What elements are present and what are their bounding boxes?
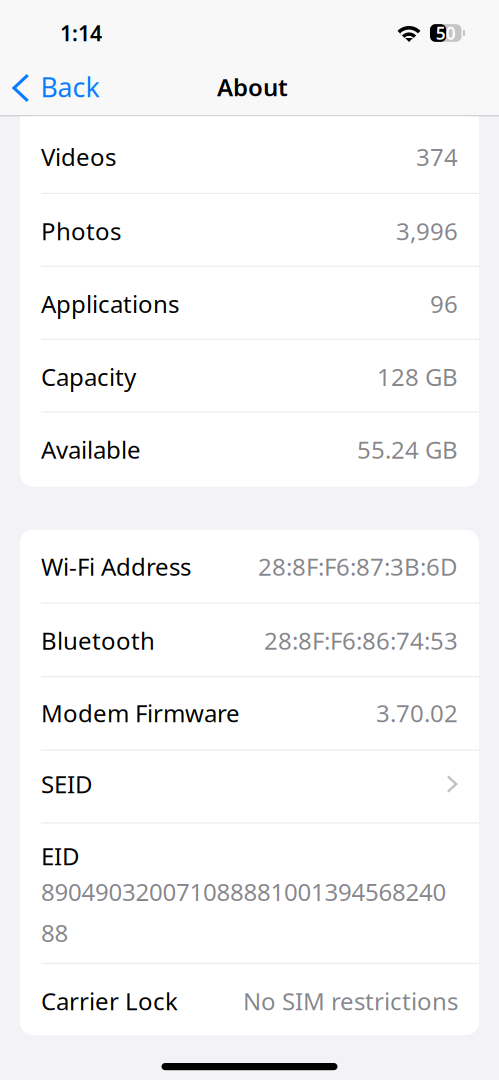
button[interactable]: Modem Firmware xyxy=(20,677,479,749)
staticText: 50 xyxy=(436,21,456,44)
staticText: 89049032007108888100139456824088 xyxy=(41,876,446,948)
staticText: About xyxy=(217,71,288,103)
button[interactable]: EID xyxy=(20,823,479,963)
staticText: Capacity xyxy=(41,361,136,393)
button[interactable]: Back xyxy=(0,61,109,113)
staticText: No SIM restrictions xyxy=(243,985,458,1017)
button[interactable]: Available xyxy=(20,413,479,487)
staticText: Applications xyxy=(41,288,179,320)
staticText: Wi-Fi Address xyxy=(41,551,191,582)
button[interactable]: Videos xyxy=(20,116,479,193)
button[interactable]: Carrier Lock xyxy=(20,964,479,1035)
staticText: Photos xyxy=(41,215,121,247)
staticText: 1:14 xyxy=(60,19,102,47)
staticText: 374 xyxy=(416,141,458,173)
staticText: 55.24 GB xyxy=(357,434,458,465)
button[interactable]: Capacity xyxy=(20,340,479,411)
staticText: 28:8F:F6:87:3B:6D xyxy=(258,551,458,582)
button[interactable]: Photos xyxy=(20,194,479,266)
button[interactable]: SEID xyxy=(20,751,479,822)
staticText: SEID xyxy=(41,768,93,800)
button[interactable]: Bluetooth xyxy=(20,604,479,676)
staticText: Carrier Lock xyxy=(41,985,178,1017)
staticText: 128 GB xyxy=(377,361,458,393)
staticText: 96 xyxy=(430,288,458,320)
staticText: Bluetooth xyxy=(41,625,155,656)
staticText: 3,996 xyxy=(396,215,458,247)
staticText: Modem Firmware xyxy=(41,697,240,729)
staticText: EID xyxy=(41,840,80,872)
staticText: Available xyxy=(41,434,141,465)
staticText: 3.70.02 xyxy=(376,697,458,729)
staticText: Videos xyxy=(41,141,116,173)
staticText: Back xyxy=(40,69,99,105)
staticText: 28:8F:F6:86:74:53 xyxy=(264,625,458,656)
button[interactable]: Applications xyxy=(20,267,479,339)
button[interactable]: Wi-Fi Address xyxy=(20,530,479,602)
